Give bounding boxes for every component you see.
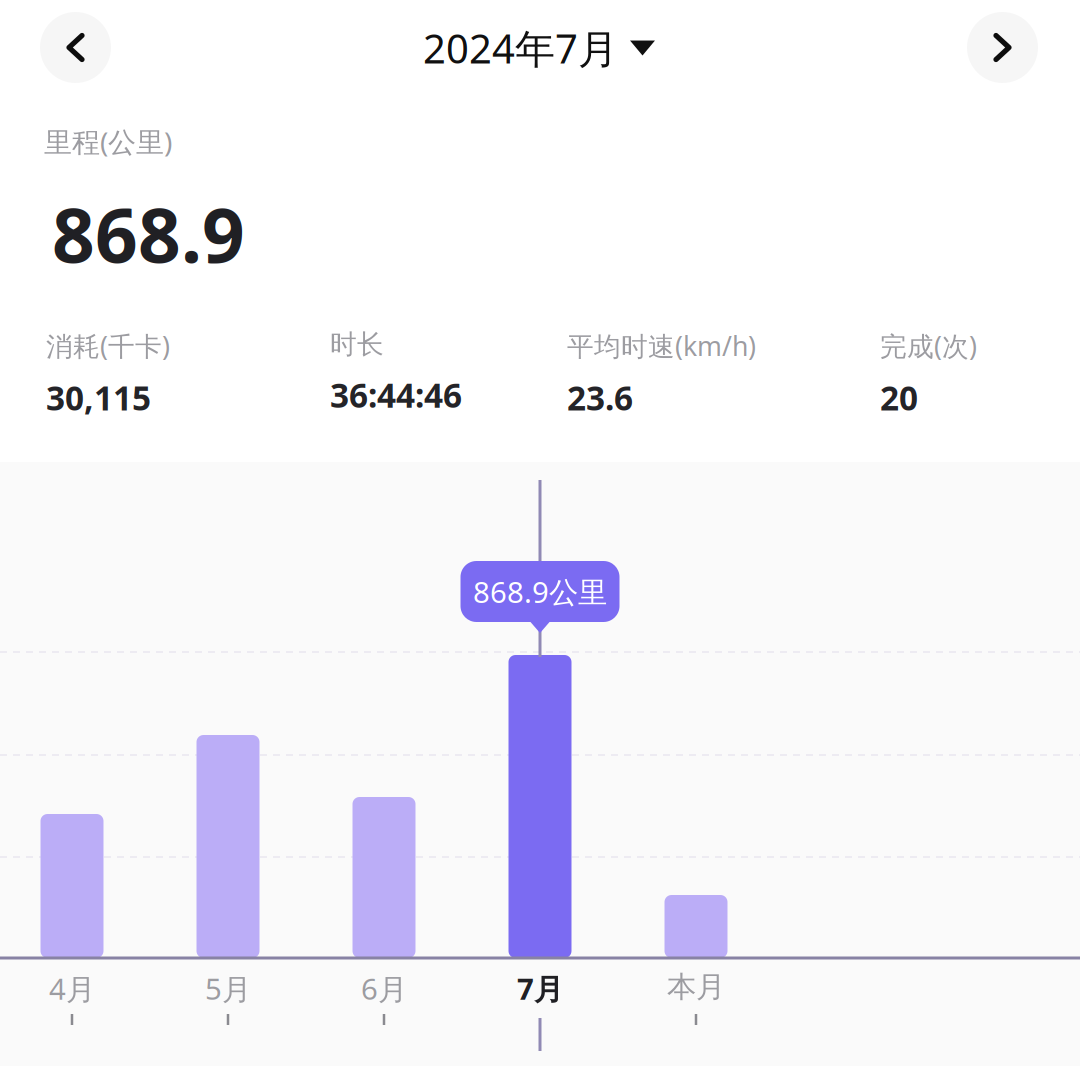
button[interactable]: Next month [967,12,1038,83]
staticText: 30,115 [46,375,151,420]
staticText: 时长 [330,328,384,361]
button[interactable]: Previous month [40,12,111,83]
staticText: 868.9 [52,184,245,283]
button[interactable]: 7月 [508,655,571,958]
staticText: 6月 [361,969,407,1008]
button[interactable]: 6月 [352,797,415,958]
staticText: 20 [880,375,918,420]
staticText: 2024年7月 [423,21,618,74]
staticText: 完成(次) [880,328,977,363]
staticText: 本月 [667,969,725,1005]
staticText: 5月 [205,969,251,1008]
button[interactable]: 本月 [664,895,727,958]
button[interactable]: 5月 [196,735,259,958]
button[interactable]: 4月 [40,814,103,958]
staticText: 里程(公里) [44,123,172,160]
button[interactable]: 2024年7月 [423,23,673,73]
staticText: 平均时速(km/h) [567,328,756,363]
staticText: 消耗(千卡) [46,328,170,363]
staticText: 4月 [49,969,95,1008]
staticText: 36:44:46 [330,373,462,417]
staticText: 7月 [517,969,563,1008]
staticText: 868.9公里 [473,572,607,611]
staticText: 23.6 [567,375,633,420]
